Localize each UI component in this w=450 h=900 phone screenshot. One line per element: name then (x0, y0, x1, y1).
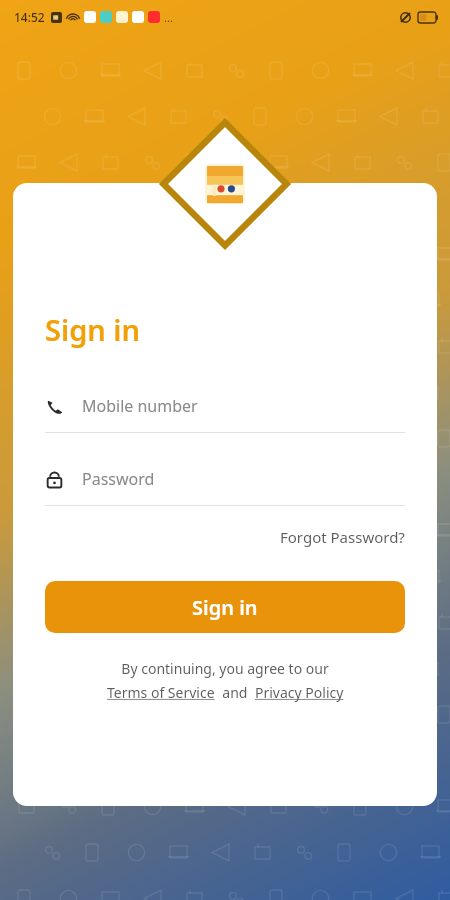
other: Password (45, 470, 64, 489)
staticText: Sign in (192, 594, 258, 621)
other: Phone (45, 397, 64, 416)
button[interactable]: Phone (45, 389, 405, 433)
staticText: Privacy Policy (255, 683, 344, 702)
button[interactable]: Sign in (45, 581, 405, 633)
staticText: 14:52 (14, 9, 45, 25)
staticText: By continuing, you agree to our (13, 659, 437, 678)
staticText: Terms of Service (107, 683, 215, 702)
staticText: Sign in (45, 310, 141, 349)
button[interactable]: Password (45, 462, 405, 506)
staticText: Forgot Password? (280, 527, 405, 547)
staticText: Password (82, 468, 155, 490)
button[interactable]: Forgot Password? (248, 522, 437, 552)
staticText: Mobile number (82, 395, 198, 417)
button[interactable]: Terms of Service (107, 683, 215, 702)
staticText: ... (164, 10, 173, 25)
staticText: and (215, 683, 255, 702)
button[interactable]: Privacy Policy (255, 683, 344, 702)
